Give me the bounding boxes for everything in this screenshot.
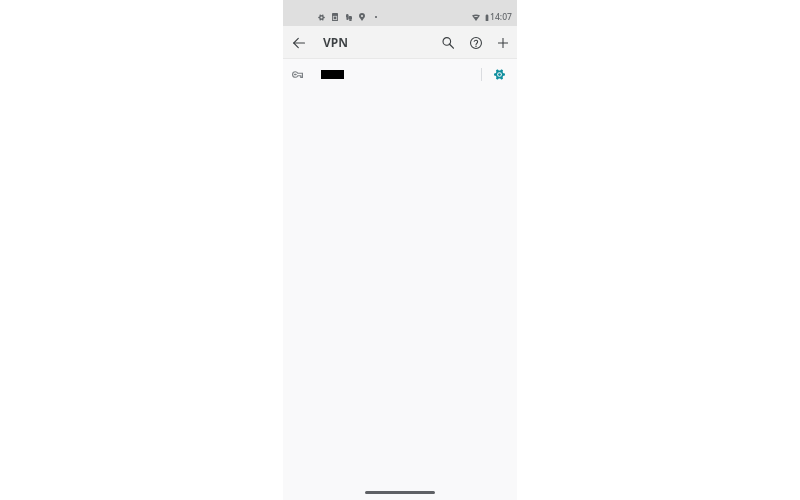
button[interactable]: Search xyxy=(436,31,460,55)
button[interactable]: VPN settings xyxy=(283,59,517,89)
staticText: 14:07 xyxy=(490,11,513,23)
button[interactable]: Help xyxy=(464,31,488,55)
button[interactable]: Back xyxy=(287,31,311,55)
button[interactable]: VPN settings xyxy=(488,63,510,85)
staticText: VPN xyxy=(323,34,349,50)
button[interactable]: Add VPN profile xyxy=(491,31,515,55)
